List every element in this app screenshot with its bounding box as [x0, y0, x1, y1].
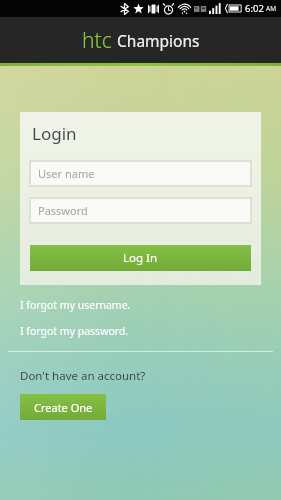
staticText: Password: [38, 203, 88, 218]
button[interactable]: I forgot my username.: [20, 297, 131, 313]
staticText: Log In: [123, 250, 158, 266]
staticText: I forgot my password.: [20, 324, 129, 338]
button[interactable]: Create One: [20, 394, 106, 420]
staticText: Don't have an account?: [20, 368, 146, 384]
staticText: AM: [266, 4, 277, 13]
staticText: Login: [32, 122, 77, 145]
button[interactable]: Log In: [30, 245, 251, 271]
staticText: Champions: [117, 30, 200, 51]
button[interactable]: Password: [30, 198, 251, 223]
staticText: User name: [38, 166, 95, 181]
button[interactable]: User name: [30, 161, 251, 186]
staticText: 6:02: [245, 2, 264, 15]
staticText: I forgot my username.: [20, 298, 131, 312]
staticText: htc: [82, 26, 112, 55]
button[interactable]: I forgot my password.: [20, 323, 129, 339]
staticText: Create One: [34, 400, 93, 415]
